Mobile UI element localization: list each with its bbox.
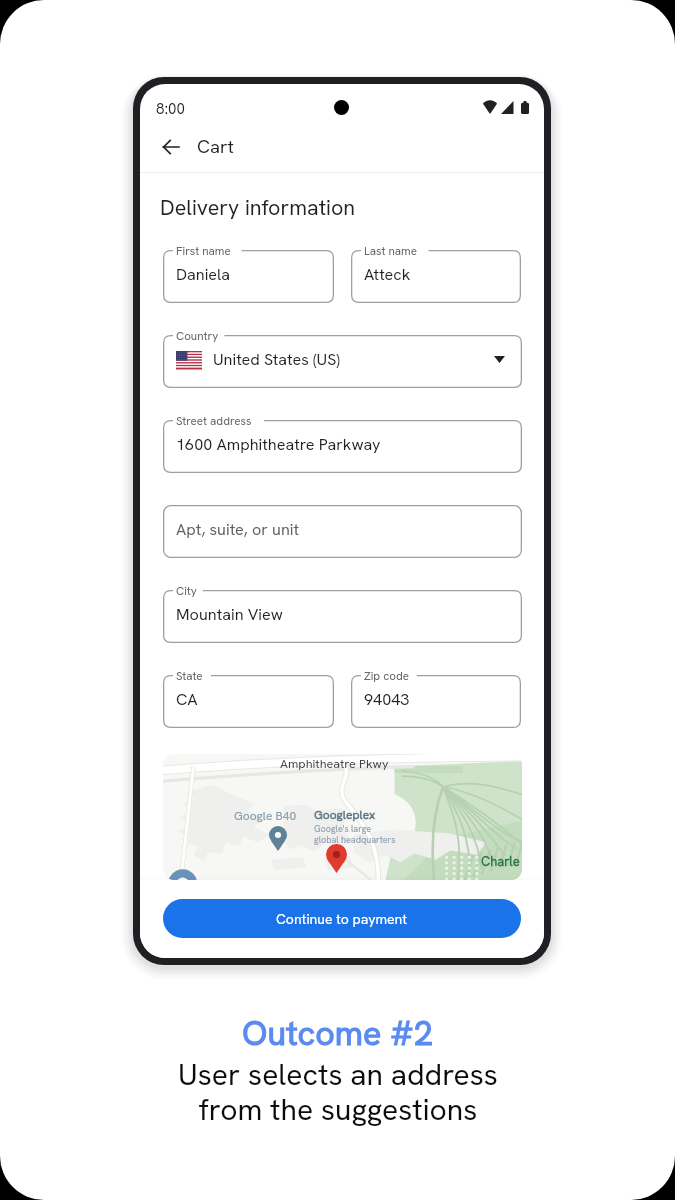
staticText: Delivery information xyxy=(160,193,356,221)
staticText: Google's large global headquarters xyxy=(314,823,396,846)
button[interactable]: Back xyxy=(148,129,194,164)
staticText: Atteck xyxy=(364,264,411,285)
staticText: Country xyxy=(176,328,219,343)
staticText: Googleplex xyxy=(314,807,376,823)
staticText: Zip code xyxy=(364,668,409,683)
staticText: CA xyxy=(176,689,198,710)
staticText: 1600 Amphitheatre Parkway xyxy=(176,434,381,455)
staticText: United States (US) xyxy=(213,349,340,370)
staticText: Continue to payment xyxy=(276,910,408,928)
staticText: 94043 xyxy=(364,689,410,710)
button[interactable]: Street address xyxy=(163,420,522,473)
staticText: 8:00 xyxy=(156,99,185,119)
staticText: Street address xyxy=(176,413,252,428)
button[interactable]: Apt, suite, or unit xyxy=(163,505,522,558)
staticText: Amphitheatre Pkwy xyxy=(280,755,389,771)
staticText: Mountain View xyxy=(176,604,283,625)
button[interactable]: Country xyxy=(163,335,522,388)
staticText: Cart xyxy=(197,134,234,158)
button[interactable]: First name xyxy=(163,250,334,303)
staticText: Charle xyxy=(481,853,520,870)
button[interactable]: City xyxy=(163,590,522,643)
staticText: Last name xyxy=(364,243,417,258)
staticText: User selects an address from the suggest… xyxy=(178,1055,498,1129)
staticText: Apt, suite, or unit xyxy=(176,519,300,540)
button[interactable]: State xyxy=(163,675,334,728)
staticText: Google B40 xyxy=(234,808,297,824)
staticText: City xyxy=(176,583,197,598)
button[interactable]: Zip code xyxy=(351,675,521,728)
staticText: First name xyxy=(176,243,231,258)
button[interactable]: Continue to payment xyxy=(163,899,521,938)
button[interactable]: Last name xyxy=(351,250,521,303)
staticText: Outcome #2 xyxy=(242,1011,433,1055)
staticText: State xyxy=(176,668,203,683)
staticText: Daniela xyxy=(176,264,231,285)
